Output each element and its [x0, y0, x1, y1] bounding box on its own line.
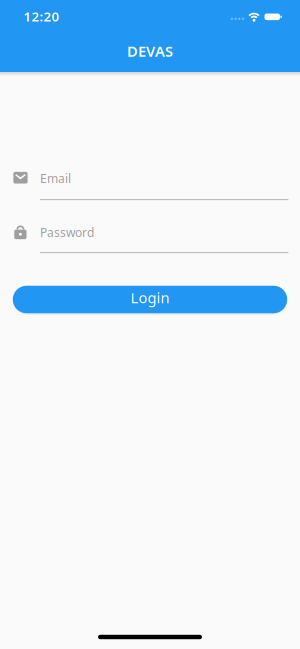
button[interactable]: Password [0, 214, 300, 260]
button[interactable]: Login [13, 286, 287, 313]
button[interactable]: Email [0, 160, 300, 208]
staticText: 12:20 [24, 7, 60, 25]
staticText: DEVAS [127, 41, 173, 61]
staticText: Email [40, 170, 71, 186]
staticText: Login [130, 288, 169, 307]
staticText: Password [40, 224, 94, 240]
